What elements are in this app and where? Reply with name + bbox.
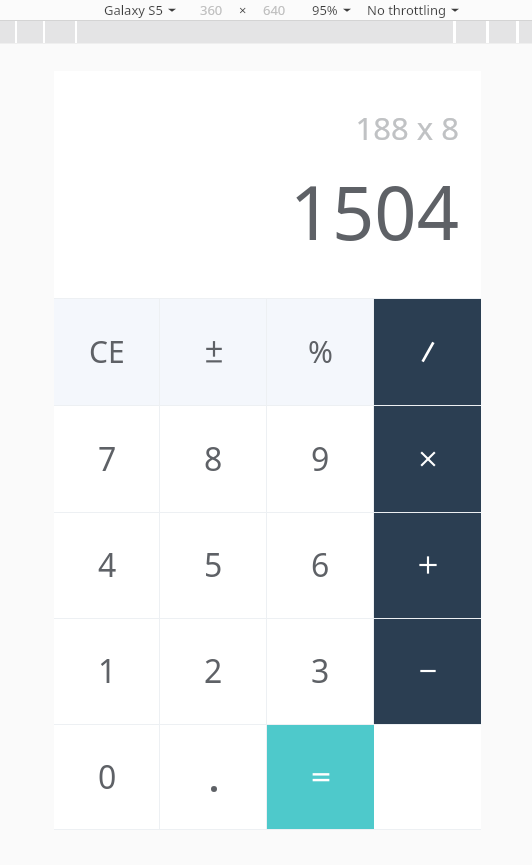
button[interactable]: 7 xyxy=(54,405,160,512)
button[interactable]: No throttling xyxy=(367,1,459,19)
staticText: % xyxy=(308,331,333,372)
staticText: No throttling xyxy=(367,1,446,19)
button[interactable]: Equals xyxy=(267,724,374,830)
staticText: 360 xyxy=(200,1,223,19)
button[interactable]: 0 xyxy=(54,724,160,830)
button[interactable]: 5 xyxy=(160,512,267,618)
staticText: 8 xyxy=(204,437,223,481)
button[interactable]: Galaxy S5 xyxy=(104,1,176,19)
button[interactable]: 4 xyxy=(54,512,160,618)
staticText: Galaxy S5 xyxy=(104,1,163,19)
staticText: 1 xyxy=(98,649,117,693)
staticText: 3 xyxy=(311,649,330,693)
staticText: 0 xyxy=(98,755,117,799)
staticText: 4 xyxy=(98,543,117,587)
button[interactable]: Subtract xyxy=(374,618,481,724)
button[interactable]: 2 xyxy=(160,618,267,724)
staticText: 640 xyxy=(263,1,286,19)
staticText: 5 xyxy=(204,543,223,587)
staticText: CE xyxy=(89,331,125,372)
button[interactable]: 95% xyxy=(312,1,351,19)
staticText: 188 x 8 xyxy=(355,107,459,149)
button[interactable]: Divide xyxy=(374,298,481,405)
staticText: 7 xyxy=(98,437,117,481)
button[interactable]: CE xyxy=(54,298,160,405)
button[interactable]: 1 xyxy=(54,618,160,724)
button[interactable]: 6 xyxy=(267,512,374,618)
button[interactable]: Multiply xyxy=(374,405,481,512)
button[interactable]: Plus minus xyxy=(160,298,267,405)
button[interactable]: 9 xyxy=(267,405,374,512)
button[interactable]: Add xyxy=(374,512,481,618)
staticText: 2 xyxy=(204,649,223,693)
button[interactable]: 8 xyxy=(160,405,267,512)
button[interactable]: % xyxy=(267,298,374,405)
staticText: × xyxy=(239,1,247,19)
staticText: 95% xyxy=(312,1,338,19)
staticText: 1504 xyxy=(289,161,459,262)
button[interactable]: 3 xyxy=(267,618,374,724)
staticText: 9 xyxy=(311,437,330,481)
staticText: 6 xyxy=(311,543,330,587)
button[interactable]: Decimal point xyxy=(160,724,267,830)
